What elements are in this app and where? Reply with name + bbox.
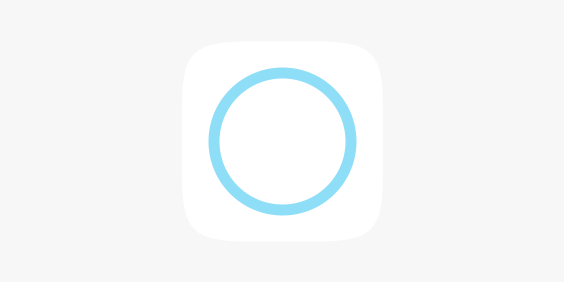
- button[interactable]: App icon: [182, 41, 383, 241]
